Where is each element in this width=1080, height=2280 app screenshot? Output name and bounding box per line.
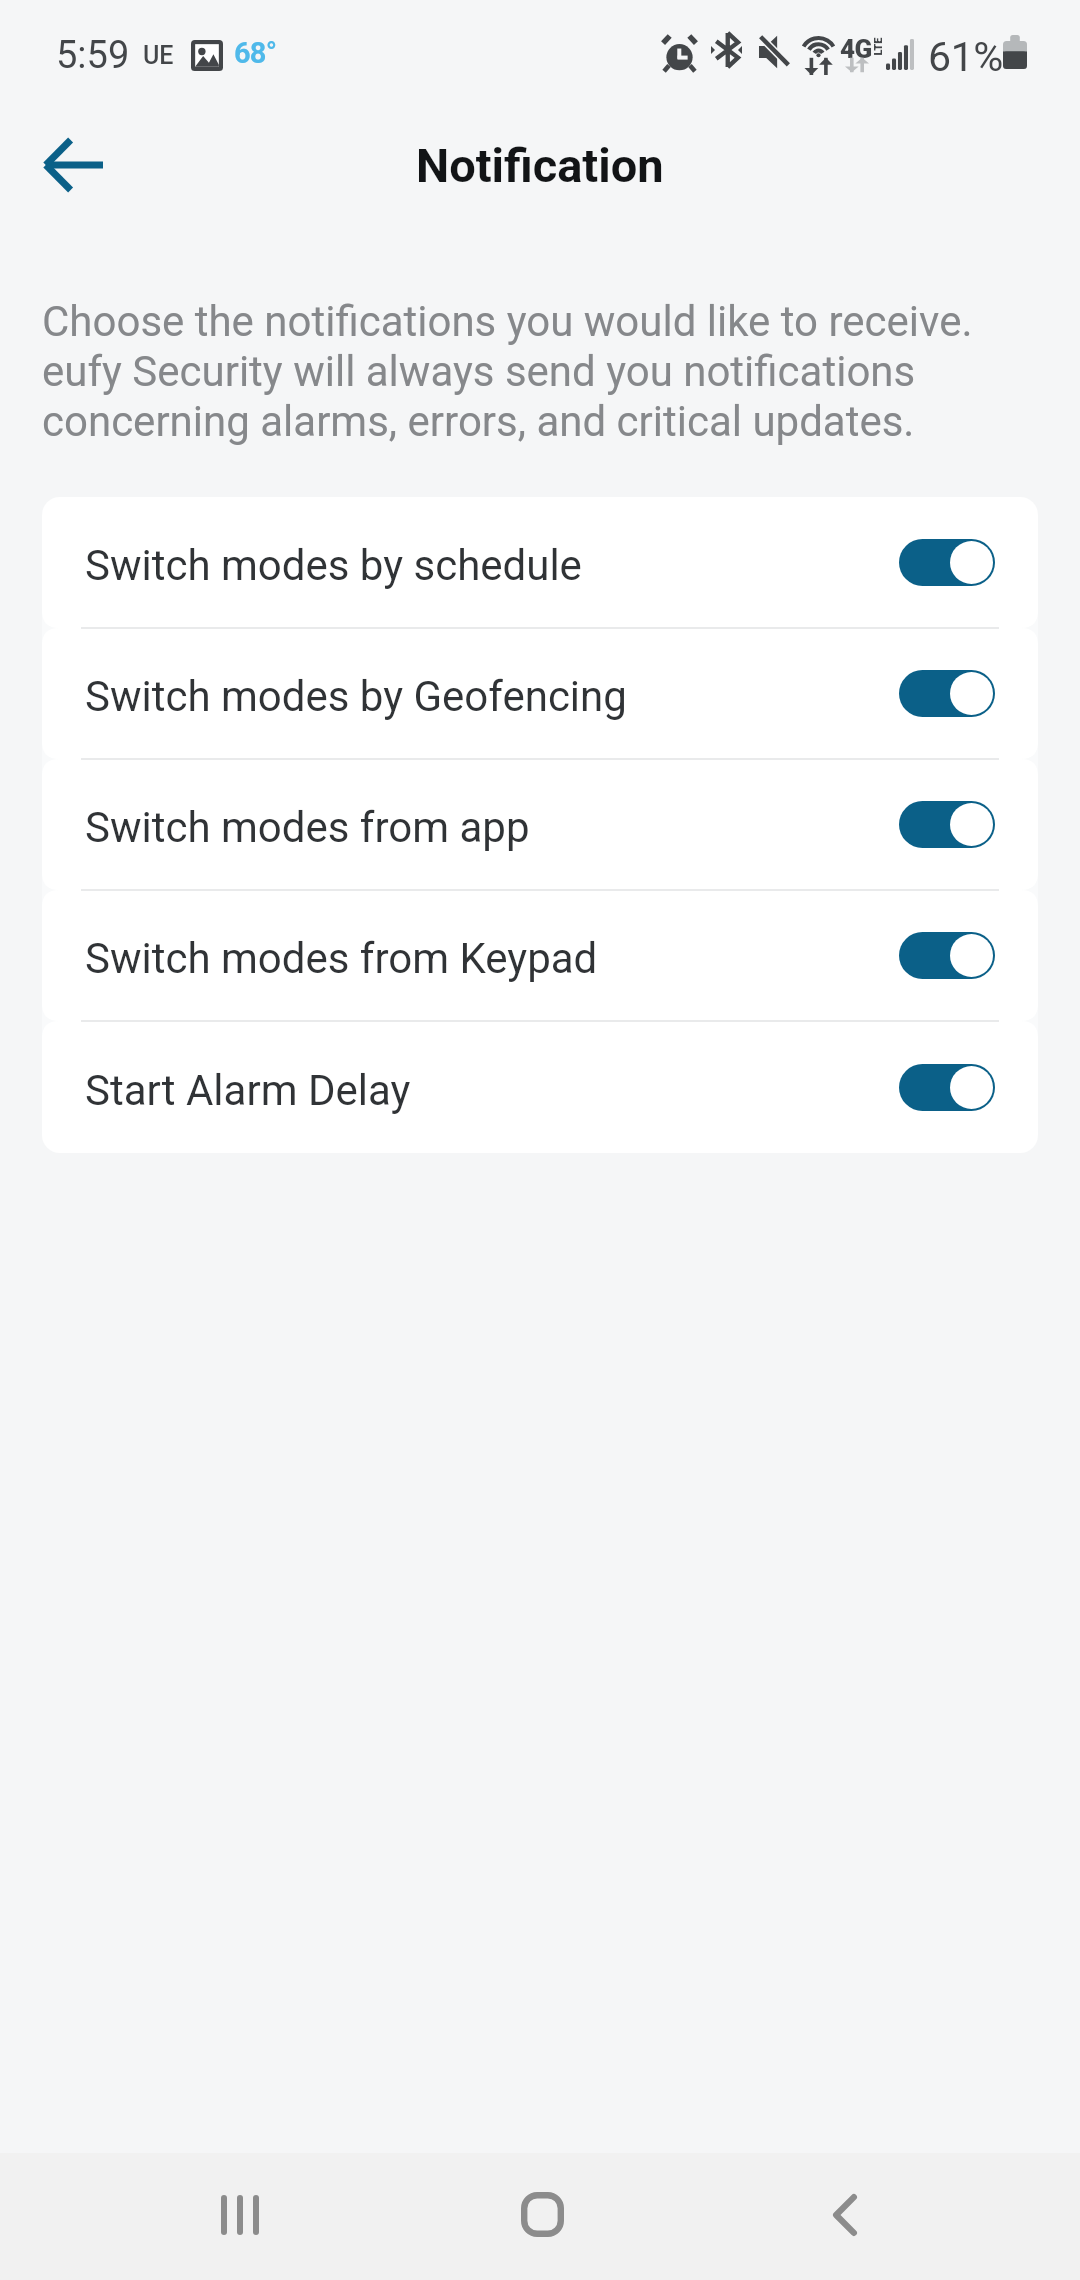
button[interactable]: Toggle on: [899, 932, 995, 979]
button[interactable]: Toggle on: [899, 539, 995, 586]
staticText: 68°: [234, 36, 277, 70]
button[interactable]: Toggle on: [899, 801, 995, 848]
staticText: 5:59: [56, 33, 130, 78]
staticText: LTE: [871, 37, 884, 55]
staticText: Switch modes by schedule: [85, 541, 582, 590]
staticText: Switch modes by Geofencing: [85, 672, 627, 721]
button[interactable]: Start Alarm Delay: [42, 1022, 1038, 1153]
staticText: 61%: [928, 33, 1003, 81]
button[interactable]: Toggle on: [899, 670, 995, 717]
button[interactable]: Recent apps: [180, 2163, 300, 2267]
button[interactable]: Switch modes by Geofencing: [42, 629, 1038, 758]
staticText: Switch modes from app: [85, 803, 530, 852]
staticText: Choose the notifications you would like …: [42, 297, 982, 446]
staticText: Start Alarm Delay: [85, 1066, 411, 1115]
staticText: Switch modes from Keypad: [85, 934, 598, 983]
button[interactable]: Home: [482, 2162, 602, 2266]
staticText: 4G: [840, 34, 872, 64]
button[interactable]: Switch modes from app: [42, 760, 1038, 889]
button[interactable]: Switch modes by schedule: [42, 497, 1038, 627]
button[interactable]: Switch modes from Keypad: [42, 891, 1038, 1020]
button[interactable]: Toggle on: [899, 1064, 995, 1111]
button[interactable]: Back: [785, 2163, 905, 2267]
staticText: Notification: [416, 138, 664, 193]
staticText: UE: [143, 41, 174, 70]
button[interactable]: Back: [10, 109, 136, 221]
